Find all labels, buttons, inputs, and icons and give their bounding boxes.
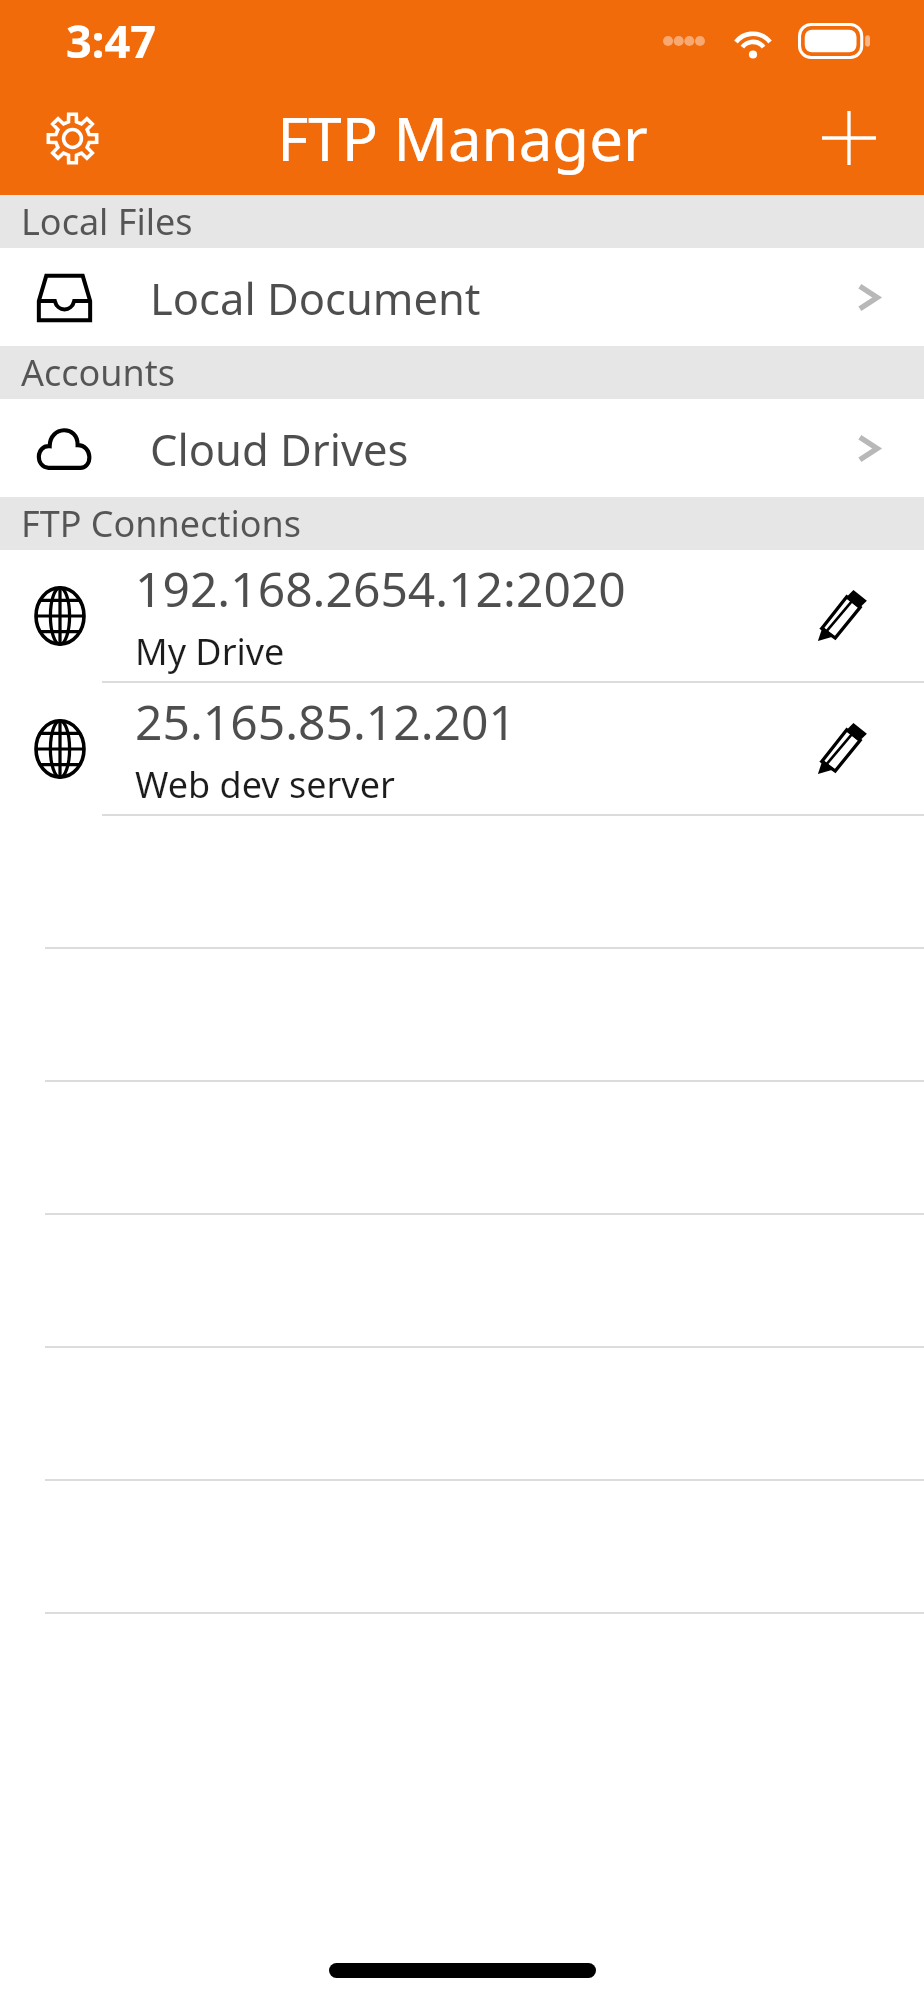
button[interactable]: Add connection xyxy=(786,81,912,195)
staticText: Cloud Drives xyxy=(150,419,409,478)
staticText: Local Files xyxy=(21,197,193,246)
button[interactable]: Edit 25.165.85.12.201 xyxy=(789,698,891,800)
staticText: 3:47 xyxy=(66,10,156,71)
button[interactable]: 25.165.85.12.201 xyxy=(0,683,924,814)
button[interactable]: Settings xyxy=(9,81,135,195)
staticText: 25.165.85.12.201 xyxy=(135,689,516,754)
staticText: 192.168.2654.12:2020 xyxy=(135,556,626,621)
button[interactable]: Cloud Drives xyxy=(0,399,924,497)
button[interactable]: Edit 192.168.2654.12:2020 xyxy=(789,565,891,667)
button[interactable]: Local Document xyxy=(0,248,924,346)
staticText: My Drive xyxy=(135,627,285,676)
staticText: FTP Manager xyxy=(277,97,648,179)
staticText: Local Document xyxy=(150,268,481,327)
button[interactable]: 192.168.2654.12:2020 xyxy=(0,550,924,681)
staticText: Accounts xyxy=(21,348,176,397)
staticText: Web dev server xyxy=(135,760,395,809)
staticText: FTP Connections xyxy=(21,499,302,548)
